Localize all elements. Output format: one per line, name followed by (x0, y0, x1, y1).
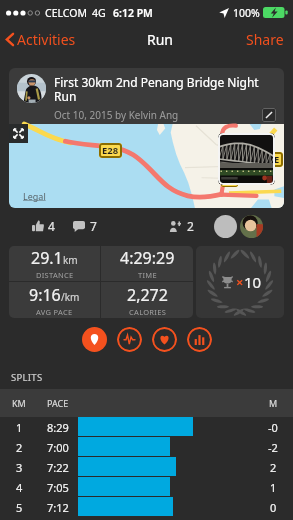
staticText: E28 (102, 144, 119, 157)
button[interactable]: 29.1 (9, 246, 100, 281)
staticText: 0 (270, 500, 277, 515)
staticText: -0 (268, 420, 278, 435)
staticText: 3 (16, 460, 23, 475)
button[interactable]: 4 (0, 477, 293, 497)
staticText: 7:05 (47, 480, 69, 495)
staticText: -2 (268, 440, 278, 455)
button[interactable]: Achievements (196, 246, 284, 318)
staticText: 2 (16, 440, 23, 455)
staticText: 7 (90, 218, 97, 234)
staticText: 9:16 (29, 284, 61, 306)
staticText: 7:22 (47, 460, 69, 475)
button[interactable]: Map (82, 327, 107, 352)
staticText: × (236, 273, 244, 291)
staticText: 5 (16, 500, 23, 515)
button[interactable]: Analysis (117, 327, 142, 352)
staticText: 2 (270, 460, 277, 475)
staticText: Oct 10, 2015 by Kelvin Ang (54, 108, 179, 122)
staticText: E (274, 153, 280, 166)
staticText: KM (12, 397, 26, 409)
staticText: 100% (233, 6, 260, 20)
button[interactable]: 3 (0, 457, 293, 477)
staticText: CELCOM (45, 6, 87, 20)
button[interactable]: Share (237, 25, 293, 54)
button[interactable]: 4:29:29 (101, 246, 193, 281)
staticText: 7:12 (47, 500, 69, 515)
staticText: 2 (187, 218, 194, 234)
staticText: Activities (17, 30, 76, 49)
button[interactable]: Activities (0, 25, 84, 54)
button[interactable]: 2 (169, 208, 194, 244)
button[interactable]: Expand map (9, 124, 28, 143)
staticText: First 30km 2nd Penang Bridge Night Run (54, 74, 276, 105)
staticText: M (269, 397, 278, 409)
staticText: AVG PACE (36, 307, 73, 317)
staticText: TIME (138, 270, 157, 280)
staticText: 4G (92, 6, 106, 20)
button[interactable]: 4 (32, 208, 55, 244)
staticText: CALORIES (129, 307, 167, 317)
staticText: Share (246, 30, 284, 49)
staticText: 6:12 PM (113, 6, 153, 20)
staticText: /km (61, 290, 80, 304)
staticText: DISTANCE (36, 270, 74, 280)
staticText: 8:29 (47, 420, 69, 435)
button[interactable]: Photo (218, 133, 275, 185)
staticText: 7:00 (47, 440, 69, 455)
button[interactable]: 9:16 (9, 282, 100, 318)
staticText: Legal (23, 190, 46, 202)
button[interactable]: 5 (0, 497, 293, 517)
button[interactable]: 1 (0, 417, 293, 437)
button[interactable]: Splits (187, 327, 212, 352)
staticText: 4:29:29 (120, 247, 175, 269)
button[interactable]: First 30km 2nd Penang Bridge Night Run (9, 68, 284, 208)
button[interactable]: Edit (262, 108, 276, 122)
button[interactable]: 7 (73, 208, 97, 244)
staticText: 1 (16, 420, 23, 435)
staticText: 1 (270, 480, 277, 495)
staticText: 4 (16, 480, 23, 495)
staticText: km (63, 253, 78, 267)
button[interactable]: 2 (0, 437, 293, 457)
staticText: SPLITS (11, 371, 43, 384)
staticText: Run (147, 30, 174, 49)
staticText: E28 (223, 177, 236, 187)
staticText: PACE (47, 397, 69, 409)
button[interactable]: 2,272 (101, 282, 193, 318)
button[interactable]: Heart rate (152, 327, 177, 352)
staticText: 2,272 (127, 284, 168, 306)
staticText: 4 (48, 218, 55, 234)
staticText: 10 (244, 272, 262, 292)
staticText: 29.1 (31, 247, 63, 269)
